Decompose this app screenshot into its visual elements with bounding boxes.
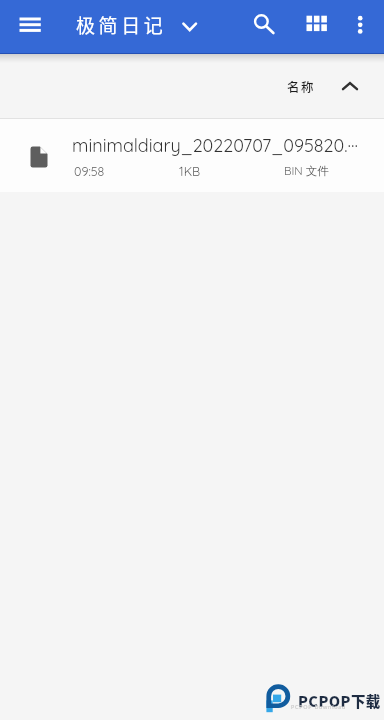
staticText: minimaldiary_20220707_095820.··· (72, 134, 358, 157)
staticText: 极简日记 (76, 11, 167, 39)
button[interactable]: 极简日记 (76, 0, 198, 54)
button[interactable]: 名称 (273, 64, 384, 108)
staticText: 1KB (179, 163, 201, 177)
staticText: 09:58 (74, 163, 105, 177)
staticText: BIN 文件 (284, 163, 329, 177)
staticText: 名称 (287, 77, 316, 95)
button[interactable]: More options (341, 0, 384, 54)
staticText: PCPOP下载 (298, 690, 381, 711)
button[interactable]: Navigation menu (0, 0, 54, 54)
staticText: PCPOP Download (291, 703, 346, 710)
button[interactable]: minimaldiary_20220707_095820.··· (0, 119, 384, 192)
button[interactable]: Search (238, 0, 284, 54)
button[interactable]: Switch to grid view (293, 0, 341, 54)
